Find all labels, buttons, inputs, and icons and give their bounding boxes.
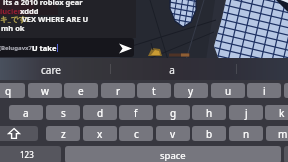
staticText: g [170, 106, 177, 120]
button[interactable]: g [156, 105, 190, 120]
button[interactable]: x [83, 126, 117, 141]
staticText: xddd [20, 6, 39, 16]
staticText: lucien [0, 6, 23, 16]
staticText: u [225, 84, 232, 98]
button[interactable]: e [64, 83, 98, 98]
button[interactable]: Shift [0, 126, 38, 141]
staticText: mh ok [1, 23, 25, 33]
button[interactable]: n [229, 126, 263, 141]
button[interactable]: a [142, 61, 202, 79]
button[interactable]: care [21, 61, 81, 79]
staticText: b [206, 127, 213, 141]
staticText: m [278, 127, 288, 141]
button[interactable]: j [229, 105, 263, 120]
staticText: x [97, 127, 103, 141]
button[interactable]: d [83, 105, 117, 120]
staticText: 123 [20, 149, 34, 160]
staticText: VEX WHERE ARE U [22, 14, 89, 24]
staticText: its a 2010 roblox gear [3, 0, 83, 7]
staticText: y [188, 84, 194, 98]
staticText: a [169, 63, 175, 77]
button[interactable]: b [192, 126, 226, 141]
staticText: i [263, 84, 266, 98]
button[interactable]: h [192, 105, 226, 120]
staticText: v [170, 127, 176, 141]
button[interactable]: i [247, 83, 281, 98]
staticText: d [97, 106, 104, 120]
staticText: c [134, 127, 139, 141]
button[interactable] [0, 38, 134, 57]
button[interactable]: o [284, 83, 288, 98]
button[interactable]: y [174, 83, 208, 98]
staticText: r [116, 84, 121, 98]
button[interactable]: s [46, 105, 80, 120]
button[interactable]: t [137, 83, 171, 98]
staticText: U take [32, 43, 57, 53]
button[interactable]: Numbers [0, 146, 61, 162]
button[interactable]: q [0, 83, 25, 98]
staticText: キ_です: [0, 14, 29, 24]
staticText: s [61, 106, 66, 120]
button[interactable]: space [65, 146, 281, 162]
button[interactable]: u [211, 83, 245, 98]
button[interactable]: k [265, 105, 288, 120]
button[interactable]: c [119, 126, 153, 141]
staticText: a [23, 106, 29, 120]
staticText: z [61, 127, 66, 141]
staticText: j [245, 106, 248, 120]
staticText: n [243, 127, 250, 141]
staticText: h [206, 106, 213, 120]
staticText: care [41, 63, 61, 77]
button[interactable]: f [119, 105, 153, 120]
button[interactable]: z [46, 126, 80, 141]
button[interactable]: Send [117, 40, 135, 56]
staticText: w [41, 84, 49, 98]
button[interactable]: a [9, 105, 43, 120]
button[interactable]: v [156, 126, 190, 141]
staticText: [Belugavx7] [0, 44, 34, 52]
staticText: e [78, 84, 84, 98]
staticText: k [279, 106, 285, 120]
button[interactable]: r [101, 83, 135, 98]
staticText: q [5, 84, 12, 98]
staticText: space [160, 149, 186, 162]
button[interactable]: w [28, 83, 62, 98]
staticText: t [152, 84, 156, 98]
button[interactable]: m [266, 126, 288, 141]
button[interactable]: Return [284, 146, 288, 162]
staticText: f [134, 106, 138, 120]
